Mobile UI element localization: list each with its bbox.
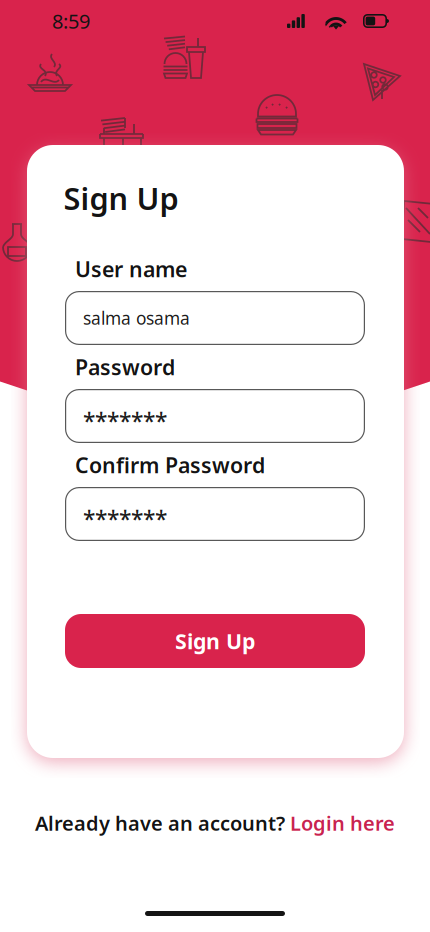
staticText: Already have an account?	[35, 810, 290, 836]
staticText: *******	[83, 504, 167, 534]
staticText: User name	[75, 255, 187, 283]
staticText: *******	[83, 406, 167, 436]
button[interactable]: Already have an account?	[35, 808, 395, 838]
staticText: salma osama	[83, 306, 190, 329]
staticText: Sign Up	[63, 178, 178, 218]
staticText: 8:59	[52, 8, 90, 34]
button[interactable]: Confirm Password	[0, 0, 430, 932]
staticText: Password	[75, 353, 175, 381]
staticText: Confirm Password	[75, 451, 265, 479]
button[interactable]: Password	[0, 0, 430, 932]
staticText: Sign Up	[175, 627, 255, 655]
staticText: Login here	[290, 810, 395, 836]
button[interactable]: User name	[0, 0, 430, 932]
button[interactable]: Sign Up	[65, 614, 365, 668]
